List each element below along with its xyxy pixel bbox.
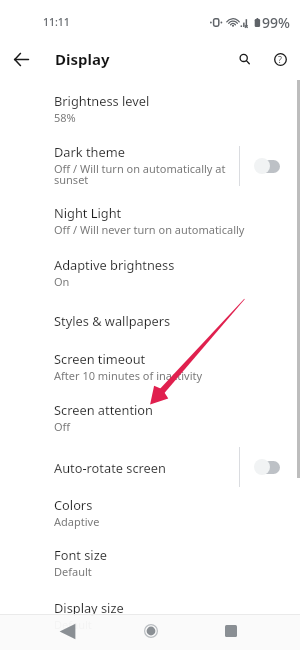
staticText: Adaptive brightness <box>54 256 175 273</box>
staticText: Screen attention <box>54 401 153 418</box>
staticText: Colors <box>54 496 93 513</box>
staticText: After 10 minutes of inactivity <box>54 368 203 383</box>
staticText: 99% <box>262 13 290 32</box>
button[interactable]: Back <box>50 615 84 647</box>
staticText: Off / Will never turn on automatically <box>54 222 245 237</box>
button[interactable]: Recent apps <box>214 615 247 647</box>
staticText: Adaptive <box>54 514 100 529</box>
staticText: Screen timeout <box>54 350 146 367</box>
button[interactable]: Brightness level <box>0 81 300 136</box>
button[interactable]: Dark theme <box>0 136 300 195</box>
button[interactable]: Auto-rotate screen <box>0 445 300 489</box>
button[interactable]: Back <box>2 40 40 78</box>
button[interactable]: Adaptive brightness <box>0 246 300 298</box>
staticText: Dark theme <box>54 143 125 160</box>
staticText: Styles & wallpapers <box>54 312 171 329</box>
button[interactable]: Search <box>228 43 260 75</box>
staticText: Default <box>54 564 92 579</box>
staticText: Brightness level <box>54 92 150 109</box>
button[interactable]: Toggle off <box>254 156 280 176</box>
staticText: 11:11 <box>43 15 70 29</box>
staticText: Auto-rotate screen <box>54 459 166 476</box>
button[interactable]: Toggle off <box>254 457 280 477</box>
staticText: Off <box>54 419 71 434</box>
staticText: Display size <box>54 599 124 616</box>
button[interactable]: Styles & wallpapers <box>0 298 300 342</box>
button[interactable]: Screen timeout <box>0 342 300 390</box>
staticText: ? <box>278 53 282 65</box>
staticText: Night Light <box>54 204 122 221</box>
staticText: Default <box>54 617 92 632</box>
staticText: Font size <box>54 546 107 563</box>
button[interactable]: Help <box>264 43 296 75</box>
button[interactable]: Font size <box>0 536 300 589</box>
staticText: Off / Will turn on automatically at suns… <box>54 161 231 188</box>
button[interactable]: Colors <box>0 489 300 536</box>
staticText: On <box>54 274 70 289</box>
staticText: Display <box>55 49 110 69</box>
button[interactable]: Night Light <box>0 195 300 246</box>
button[interactable]: Home <box>134 615 167 647</box>
staticText: 58% <box>54 110 76 125</box>
button[interactable]: Screen attention <box>0 390 300 445</box>
button[interactable]: Display size <box>0 589 300 642</box>
